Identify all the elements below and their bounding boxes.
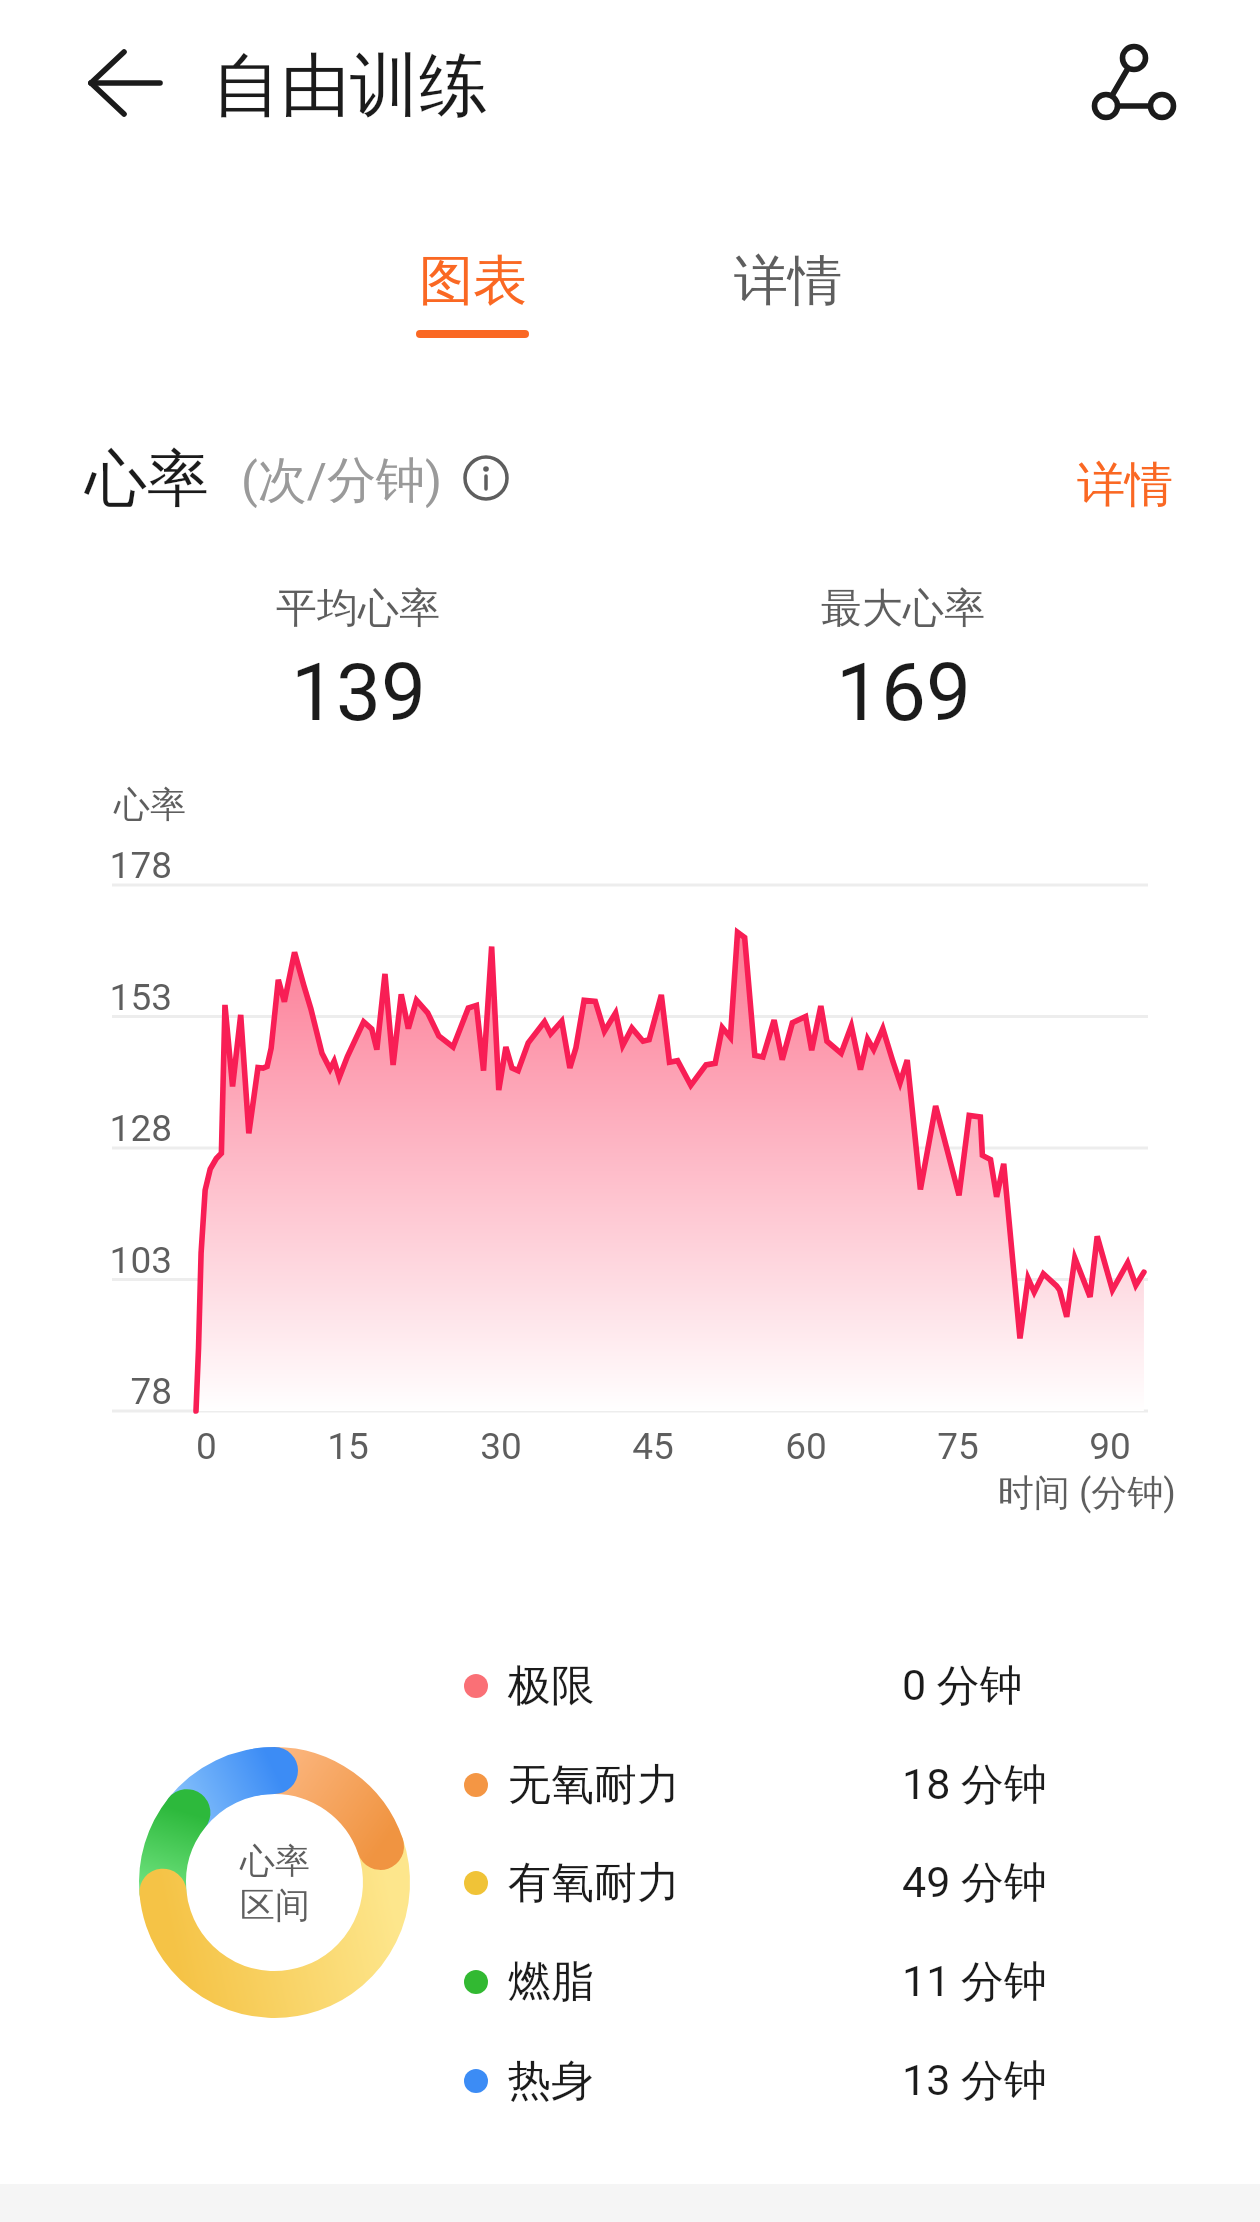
staticText: 心率 [240,1839,310,1883]
staticText: 燃脂 [508,1955,594,2009]
button[interactable]: 无氧耐力 [440,1736,1080,1834]
button[interactable]: Share [1074,22,1194,142]
staticText: 区间 [240,1883,310,1927]
staticText: 极限 [508,1659,594,1713]
button[interactable]: 燃脂 [440,1933,1080,2031]
button[interactable]: 详情 [1060,450,1190,520]
staticText: 49 分钟 [902,1856,1047,1910]
button[interactable]: 详情 [630,247,945,337]
staticText: 详情 [734,247,842,315]
button[interactable]: 有氧耐力 [440,1834,1080,1932]
staticText: 0 分钟 [902,1659,1023,1713]
staticText: 图表 [419,247,527,315]
staticText: 详情 [1077,455,1173,515]
staticText: 60 [746,1425,866,1468]
staticText: 139 [291,646,426,740]
staticText: 153 [40,976,172,1019]
staticText: 30 [441,1425,561,1468]
staticText: 自由训练 [212,43,488,130]
button[interactable]: Back [45,23,165,143]
staticText: (次/分钟) [241,450,443,512]
staticText: 平均心率 [276,583,440,635]
staticText: 心率 [114,782,186,827]
staticText: 15 [288,1425,408,1468]
staticText: 103 [40,1239,172,1282]
staticText: 75 [898,1425,1018,1468]
staticText: 13 分钟 [902,2054,1047,2108]
staticText: 无氧耐力 [508,1758,680,1812]
button[interactable]: 热身 [440,2032,1080,2130]
button[interactable]: 图表 [315,247,630,367]
staticText: 128 [40,1107,172,1150]
staticText: 11 分钟 [902,1955,1047,2009]
staticText: 时间 (分钟) [998,1470,1176,1515]
staticText: 心率 [85,440,209,518]
staticText: 78 [40,1370,172,1413]
staticText: 0 [196,1425,316,1468]
button[interactable]: 极限 [440,1637,1080,1735]
staticText: 169 [836,646,971,740]
staticText: 有氧耐力 [508,1856,680,1910]
staticText: 45 [593,1425,713,1468]
staticText: 热身 [508,2054,594,2108]
staticText: 90 [1050,1425,1170,1468]
staticText: 178 [40,844,172,887]
staticText: 18 分钟 [902,1758,1047,1812]
staticText: 最大心率 [821,583,985,635]
